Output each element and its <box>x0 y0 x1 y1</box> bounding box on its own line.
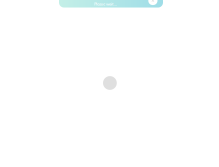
staticText: Please wait... <box>94 1 117 7</box>
button[interactable]: Please wait... <box>59 0 163 7</box>
button[interactable]: Dismiss <box>148 0 157 5</box>
